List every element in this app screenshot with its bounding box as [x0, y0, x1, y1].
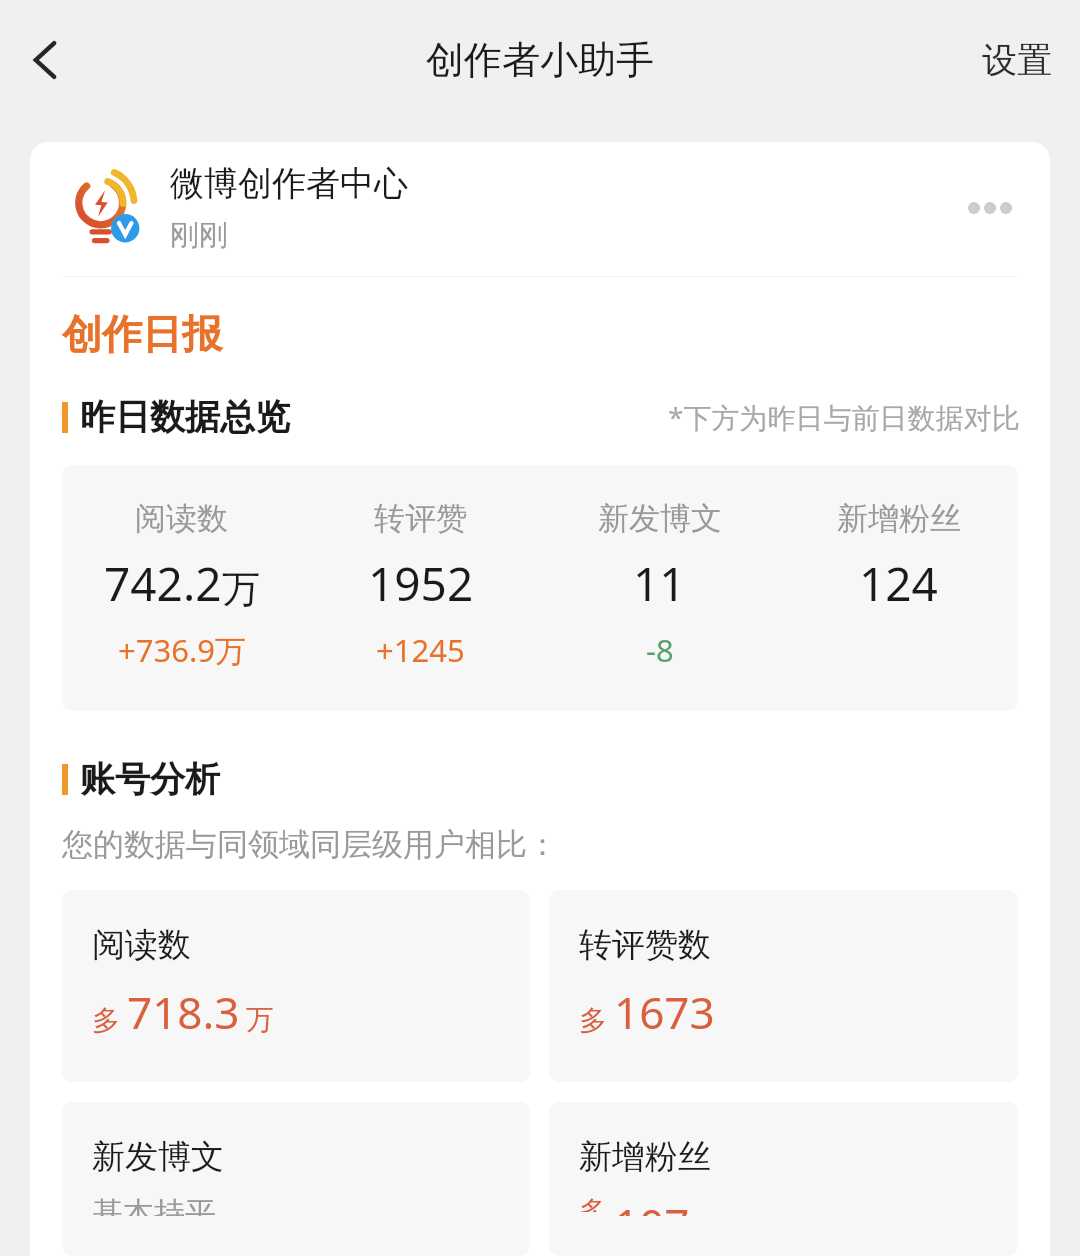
staticText: 107 [614, 1194, 690, 1216]
staticText: 多 [579, 1194, 607, 1212]
staticText: 基本持平 [92, 1194, 216, 1216]
button[interactable]: 阅读数 [62, 890, 530, 1082]
staticText: 创作日报 [62, 309, 222, 359]
staticText: 阅读数 [92, 924, 191, 966]
staticText: 新增粉丝 [837, 499, 961, 538]
staticText: 转评赞数 [579, 924, 711, 966]
staticText: +736.9万 [118, 629, 246, 671]
staticText: 新增粉丝 [579, 1136, 711, 1178]
staticText: +1245 [376, 629, 465, 671]
button[interactable]: 新增粉丝 [549, 1102, 1018, 1256]
staticText: 新发博文 [92, 1136, 224, 1178]
staticText: 新发博文 [598, 499, 722, 538]
staticText: 设置 [982, 38, 1052, 82]
staticText: 阅读数 [135, 499, 228, 538]
button[interactable]: Back [8, 21, 86, 99]
staticText: 转评赞 [374, 499, 467, 538]
button[interactable]: 微博创作者中心 [62, 162, 1024, 254]
staticText: 昨日数据总览 [80, 395, 290, 439]
staticText: 多 [92, 1003, 120, 1038]
button[interactable]: More options [956, 190, 1024, 226]
button[interactable]: 设置 [954, 24, 1080, 96]
staticText: 创作者小助手 [426, 36, 654, 84]
staticText: 账号分析 [80, 757, 220, 801]
staticText: 万 [222, 565, 260, 613]
staticText: 万 [246, 1002, 274, 1037]
staticText: 742.2 [104, 552, 222, 615]
button[interactable]: 转评赞数 [549, 890, 1018, 1082]
staticText: 11 [633, 552, 686, 615]
staticText: 您的数据与同领域同层级用户相比： [62, 825, 558, 864]
staticText: 刚刚 [170, 217, 228, 254]
staticText: 微博创作者中心 [170, 162, 408, 205]
staticText: -8 [646, 629, 674, 671]
staticText: 1952 [368, 552, 474, 615]
staticText: 718.3 [127, 982, 240, 1042]
staticText: 1673 [614, 982, 715, 1042]
staticText: *下方为昨日与前日数据对比 [668, 398, 1020, 436]
staticText: 124 [859, 552, 938, 615]
staticText: 多 [579, 1003, 607, 1038]
button[interactable]: 新发博文 [62, 1102, 530, 1256]
